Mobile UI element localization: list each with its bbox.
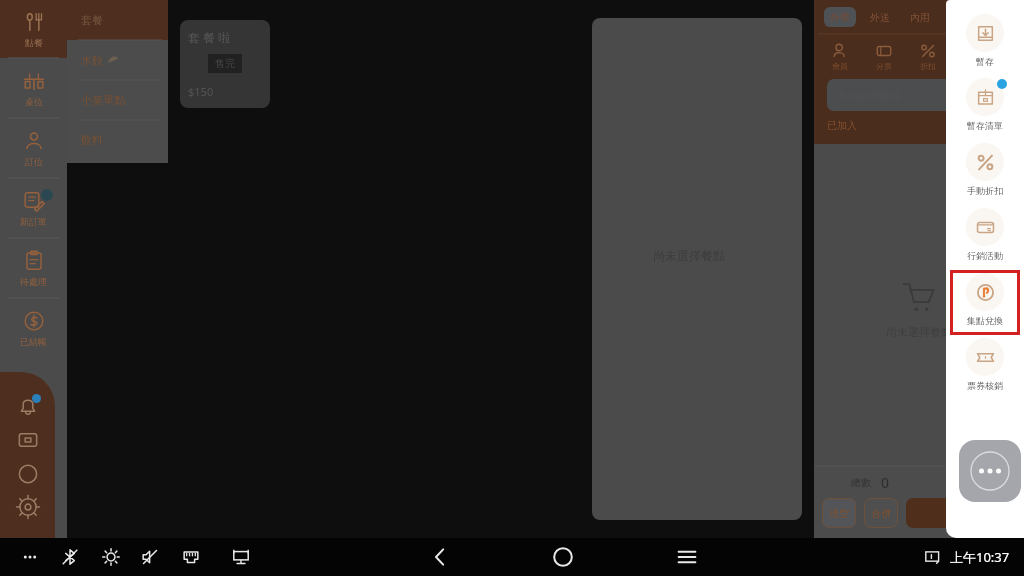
staticText: 手動折扣 xyxy=(967,185,1003,196)
staticText: $150 xyxy=(188,84,214,99)
staticText: 桌位 xyxy=(25,96,43,107)
staticText: 小菜單點 xyxy=(81,93,125,107)
staticText: 清空 xyxy=(829,507,849,520)
button[interactable]: 外送 xyxy=(864,7,896,27)
button[interactable]: Bluetooth off xyxy=(51,538,89,576)
button[interactable]: 飲料 xyxy=(67,120,168,160)
staticText: 外送 xyxy=(870,11,890,24)
staticText: 行銷活動 xyxy=(967,250,1003,261)
button[interactable] xyxy=(906,498,1020,528)
button[interactable]: 套 餐 啦 xyxy=(180,20,270,108)
staticText: 集點兌換 xyxy=(967,315,1003,326)
button[interactable]: More xyxy=(11,538,49,576)
button[interactable]: 內用 xyxy=(904,7,936,27)
staticText: 售完 xyxy=(215,57,235,70)
staticText: 0 xyxy=(881,473,890,492)
staticText: 合併 xyxy=(871,507,891,520)
staticText: 上午10:37 xyxy=(950,548,1010,566)
staticText: 新訂單 xyxy=(20,216,47,227)
staticText: 票券核銷 xyxy=(967,380,1003,391)
staticText: 尚未選擇餐點 xyxy=(653,248,725,263)
staticText: 飲料 xyxy=(81,133,103,147)
staticText: 暫存清單 xyxy=(967,120,1003,131)
staticText: 套餐 xyxy=(81,13,103,27)
staticText: 水餃 xyxy=(81,53,103,67)
button[interactable]: 套餐 xyxy=(67,0,168,40)
staticText: 訂位 xyxy=(25,156,43,167)
staticText: 已加入 xyxy=(827,119,857,132)
button[interactable]: 票券核銷 xyxy=(950,335,1020,400)
staticText: 分票 xyxy=(876,61,892,71)
button[interactable]: 會員 xyxy=(818,43,862,71)
button[interactable]: Mute xyxy=(131,538,169,576)
staticText: 待處理 xyxy=(20,276,47,287)
staticText: 已結帳 xyxy=(20,336,47,347)
button[interactable]: Settings xyxy=(16,495,40,519)
button[interactable]: Recents xyxy=(665,538,709,576)
button[interactable]: 合併 xyxy=(864,498,898,528)
button[interactable]: Projection xyxy=(222,538,260,576)
button[interactable]: More options xyxy=(959,440,1021,502)
button[interactable]: Back xyxy=(418,538,462,576)
button[interactable]: 桌位 xyxy=(0,58,67,118)
button[interactable]: Notifications xyxy=(16,395,40,419)
button[interactable]: 訂位 xyxy=(0,118,67,178)
button[interactable]: 行銷活動 xyxy=(950,205,1020,270)
button[interactable]: 待處理 xyxy=(0,238,67,298)
staticText: 內用 xyxy=(910,11,930,24)
staticText: 暫存 xyxy=(976,56,994,67)
button[interactable]: 點餐 xyxy=(0,0,67,58)
staticText: 套 餐 啦 xyxy=(188,29,231,45)
staticText: 外帶 xyxy=(830,11,850,24)
button[interactable]: 折扣 xyxy=(906,43,950,71)
button[interactable]: Cash drawer xyxy=(16,428,40,452)
button[interactable]: Ethernet xyxy=(172,538,210,576)
staticText: 尚未選擇餐點 xyxy=(886,325,952,339)
button[interactable]: 小菜單點 xyxy=(67,80,168,120)
button[interactable]: Home xyxy=(541,538,585,576)
button[interactable]: 清空 xyxy=(822,498,856,528)
button[interactable]: 分票 xyxy=(862,43,906,71)
button[interactable]: 搜尋或掃描條碼 xyxy=(827,79,1018,111)
staticText: 會員 xyxy=(832,61,848,71)
button[interactable]: 已結帳 xyxy=(0,298,67,358)
button[interactable]: 手動折扣 xyxy=(950,140,1020,205)
staticText: 點餐 xyxy=(25,37,43,48)
staticText: 折扣 xyxy=(920,61,936,71)
button[interactable]: Shift xyxy=(16,462,40,486)
button[interactable]: 新訂單 xyxy=(0,178,67,238)
button[interactable]: 暫存 xyxy=(950,11,1020,75)
staticText: 總數 xyxy=(851,476,871,489)
button[interactable]: 外帶 xyxy=(824,7,856,27)
button[interactable]: Brightness xyxy=(92,538,130,576)
button[interactable]: 暫存清單 xyxy=(950,75,1020,140)
button[interactable]: 水餃 xyxy=(67,40,168,80)
button[interactable]: 集點兌換 xyxy=(950,270,1020,335)
